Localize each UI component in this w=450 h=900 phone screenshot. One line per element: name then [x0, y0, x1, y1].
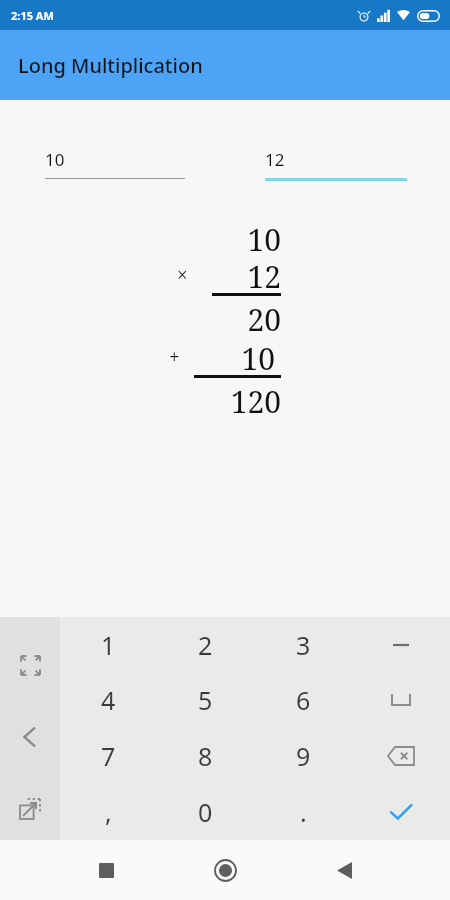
staticText: 12	[265, 148, 285, 171]
button[interactable]: Expand keyboard	[8, 643, 52, 687]
staticText: 7	[101, 739, 116, 773]
staticText: 4	[101, 683, 116, 717]
button[interactable]: 4	[60, 672, 157, 728]
button[interactable]: 6	[254, 672, 352, 728]
staticText: 8	[198, 739, 213, 773]
staticText: 10	[241, 338, 275, 375]
button[interactable]: 12	[265, 148, 407, 181]
button[interactable]: Home	[201, 846, 249, 894]
button[interactable]: .	[254, 784, 352, 840]
button[interactable]: 8	[157, 728, 254, 784]
button[interactable]: 0	[157, 784, 254, 840]
staticText: 12	[247, 256, 281, 293]
staticText: 120	[230, 381, 281, 418]
staticText: ,	[105, 795, 112, 829]
button[interactable]: ,	[60, 784, 157, 840]
staticText: 6	[296, 683, 311, 717]
staticText: +	[169, 344, 180, 370]
button[interactable]: Recent apps	[82, 846, 130, 894]
button[interactable]: 10	[45, 148, 185, 179]
staticText: 1	[101, 628, 116, 662]
button[interactable]: Backspace	[352, 728, 450, 784]
staticText: 2:15 AM	[11, 8, 54, 23]
button[interactable]: 5	[157, 672, 254, 728]
staticText: 10	[45, 148, 65, 171]
staticText: 2	[198, 628, 213, 662]
staticText: 20	[247, 299, 281, 336]
button[interactable]: 2	[157, 617, 254, 672]
staticText: .	[300, 795, 307, 829]
button[interactable]: 9	[254, 728, 352, 784]
button[interactable]: Minus	[352, 617, 450, 672]
button[interactable]: Back	[8, 715, 52, 759]
button[interactable]: 3	[254, 617, 352, 672]
staticText: ×	[177, 262, 188, 288]
staticText: 0	[198, 795, 213, 829]
button[interactable]: Space	[352, 672, 450, 728]
button[interactable]: 1	[60, 617, 157, 672]
staticText: 10	[247, 219, 281, 256]
button[interactable]: Done	[352, 784, 450, 840]
staticText: Long Multiplication	[18, 52, 203, 79]
button[interactable]: 7	[60, 728, 157, 784]
button[interactable]: Back	[320, 846, 368, 894]
staticText: 3	[296, 628, 311, 662]
staticText: 5	[198, 683, 213, 717]
staticText: 9	[296, 739, 311, 773]
button[interactable]: Detach keyboard	[8, 787, 52, 831]
